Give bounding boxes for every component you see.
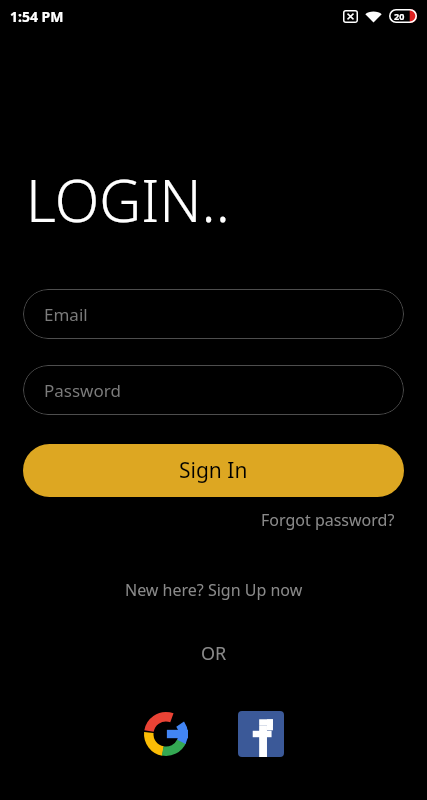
button[interactable]: Email — [23, 289, 404, 339]
staticText: New here? Sign Up now — [125, 579, 303, 601]
button[interactable]: Sign in with Facebook — [238, 711, 284, 757]
staticText: LOGIN.. — [26, 160, 230, 239]
staticText: Email — [44, 303, 88, 326]
staticText: OR — [201, 641, 227, 666]
button[interactable]: Password — [23, 365, 404, 415]
staticText: 20 — [394, 10, 405, 22]
button[interactable]: Sign In — [23, 444, 404, 497]
button[interactable]: Forgot password? — [257, 505, 399, 535]
staticText: Forgot password? — [261, 509, 395, 531]
button[interactable]: Sign in with Google — [143, 711, 189, 757]
staticText: Sign In — [179, 456, 248, 485]
button[interactable]: New here? Sign Up now — [119, 575, 309, 605]
staticText: 1:54 PM — [10, 7, 64, 26]
staticText: Password — [44, 379, 121, 402]
